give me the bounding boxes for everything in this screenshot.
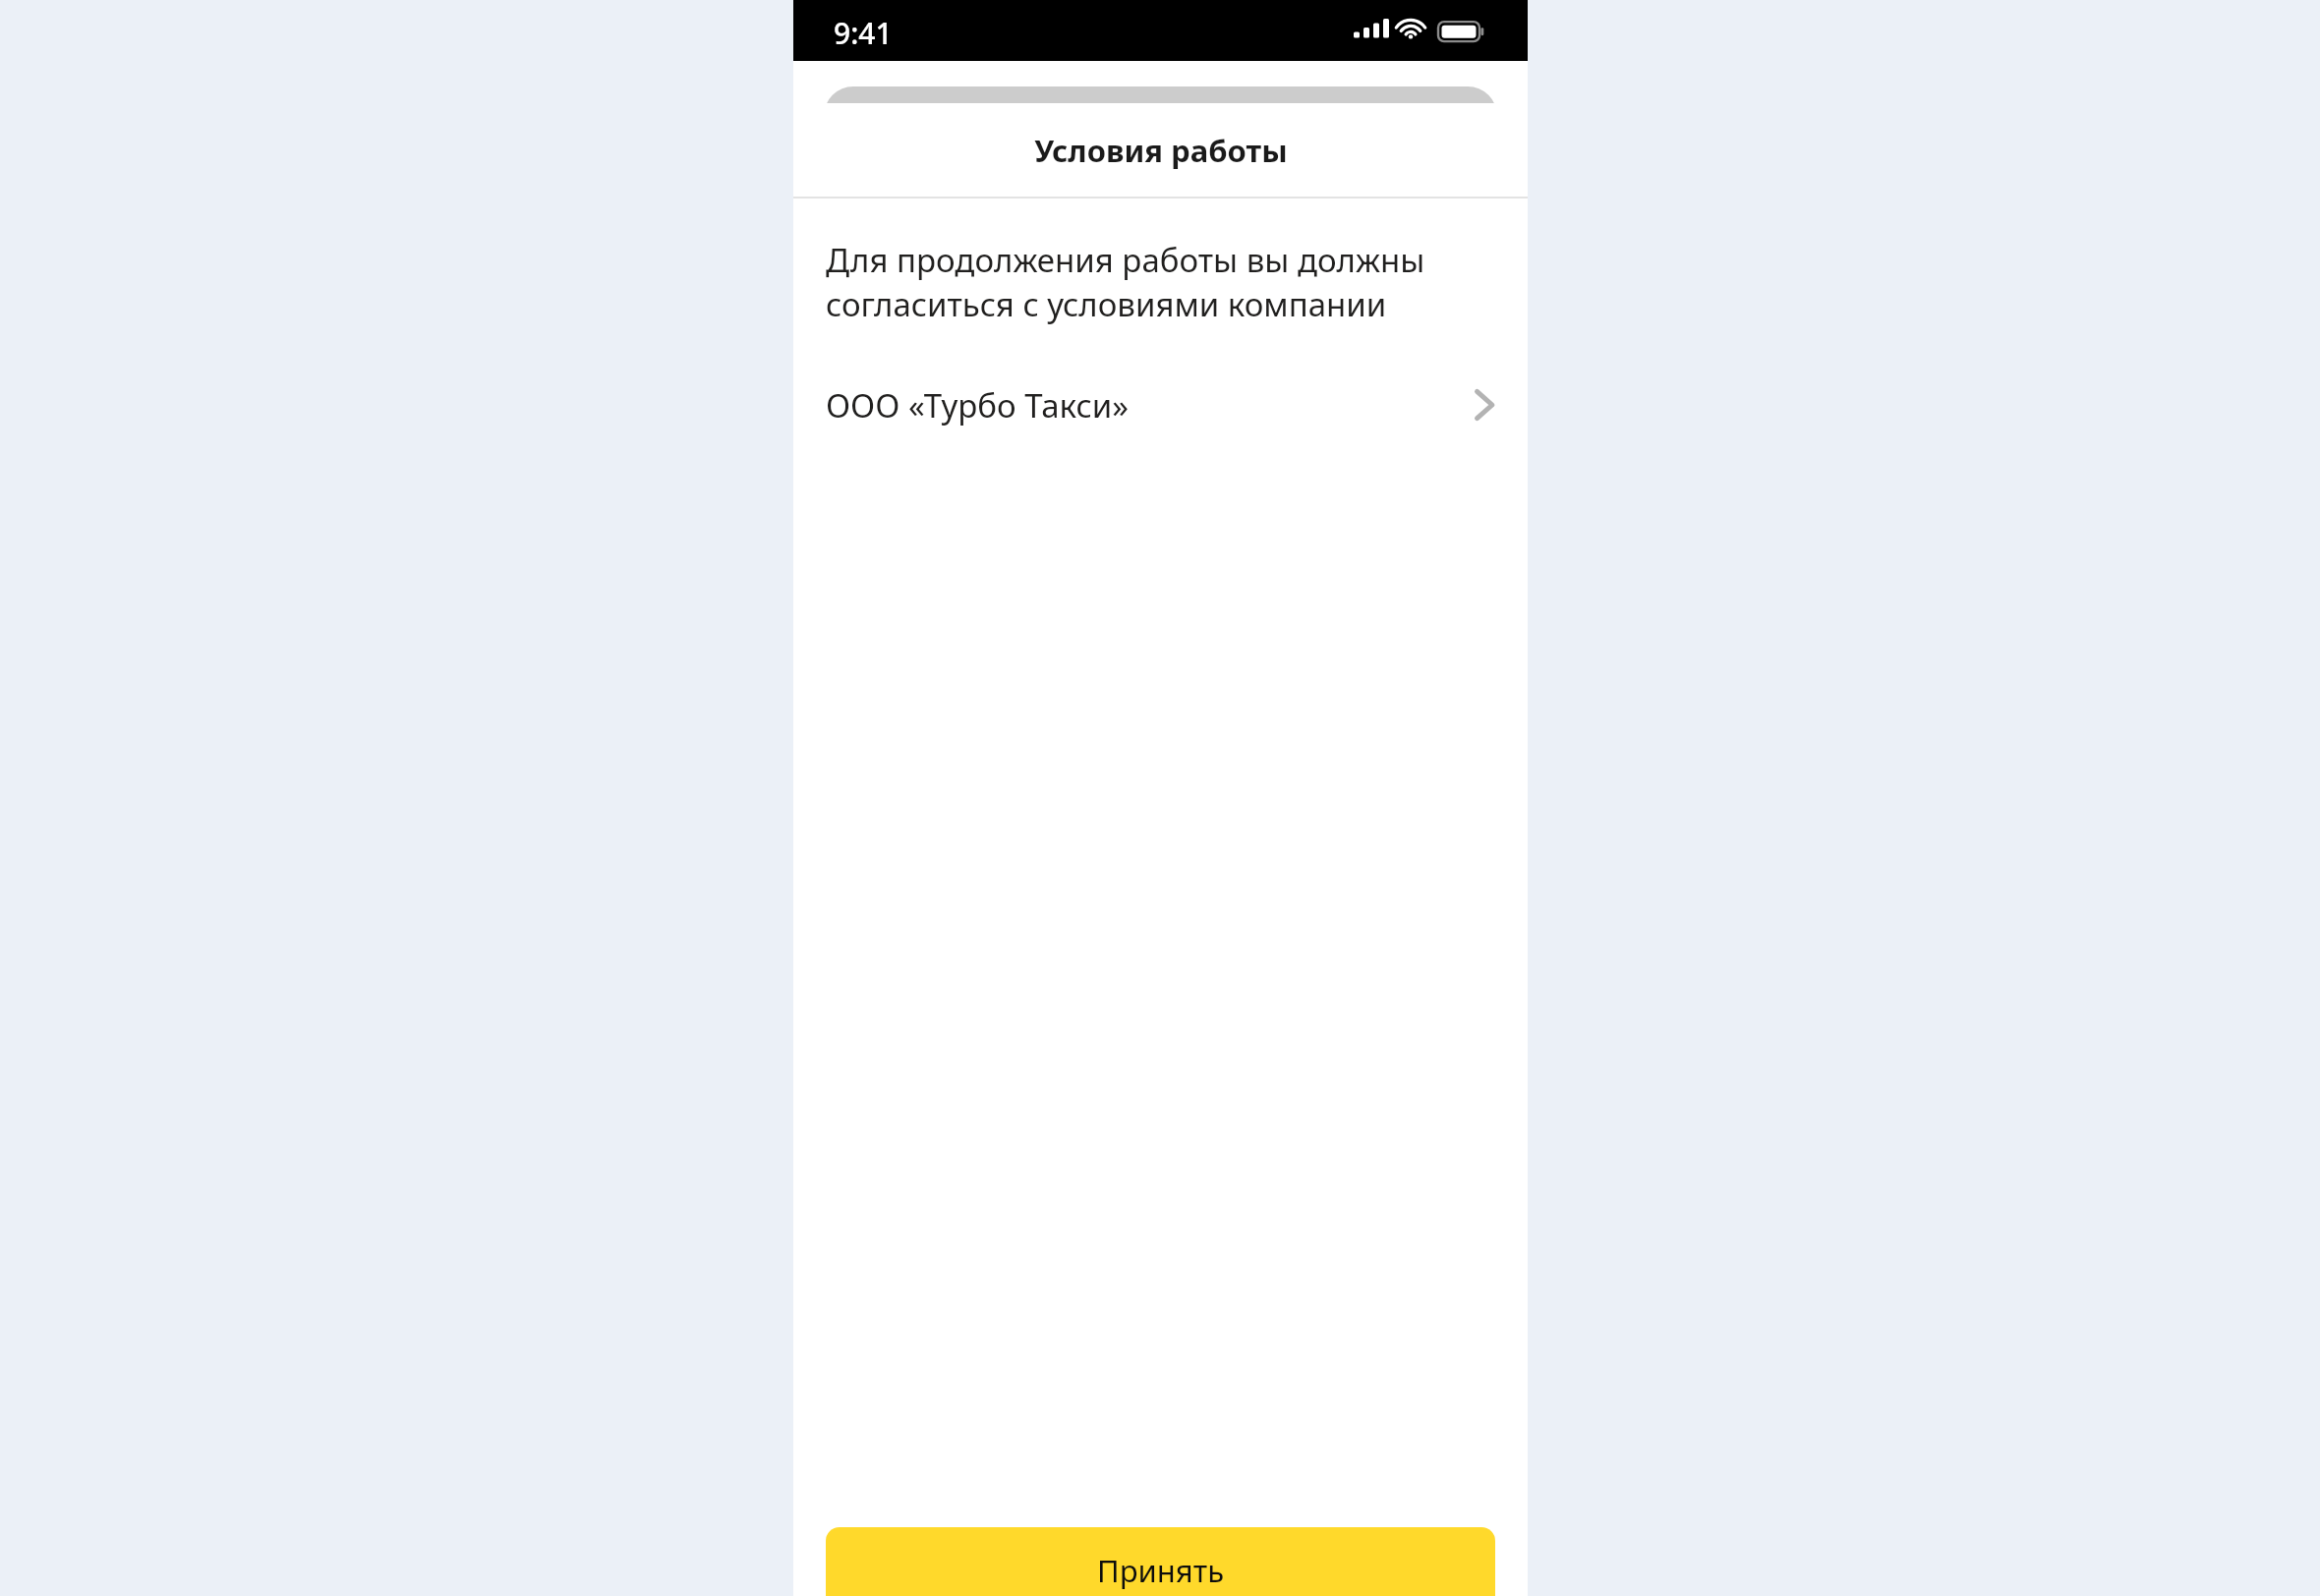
staticText: Условия работы — [1034, 130, 1288, 171]
staticText: ООО «Турбо Такси» — [826, 383, 1474, 427]
button[interactable]: ООО «Турбо Такси» — [793, 363, 1528, 447]
staticText: Для продолжения работы вы должны согласи… — [826, 238, 1425, 326]
staticText: Принять — [1097, 1550, 1225, 1591]
other: Открыть условия — [1474, 388, 1495, 422]
staticText: 9:41 — [834, 13, 893, 53]
button[interactable]: Принять — [826, 1527, 1495, 1596]
